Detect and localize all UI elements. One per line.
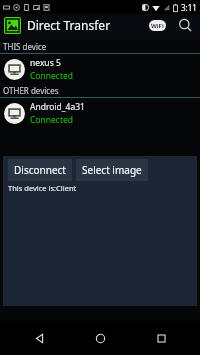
button[interactable]: Wi-Fi Direct settings [146,14,168,36]
staticText: Select image [82,163,142,177]
staticText: Disconnect [14,163,66,177]
staticText: Connected [30,70,73,82]
button[interactable]: Android_4a31 [0,98,200,128]
staticText: THIS device [3,41,47,52]
staticText: WiFi [151,22,164,30]
staticText: Direct Transfer [27,17,111,33]
button[interactable]: Back [17,321,61,355]
button[interactable]: Recent apps [139,321,183,355]
staticText: OTHER devices [3,85,59,96]
staticText: Android_4a31 [30,101,85,113]
button[interactable]: Home [78,321,122,355]
staticText: Connected [30,114,73,126]
staticText: 3:11 [181,2,197,13]
button[interactable]: App icon [4,17,21,34]
staticText: This device is:Client [8,183,77,193]
button[interactable]: Select image [76,159,148,181]
button[interactable]: Search [174,14,196,36]
button[interactable]: Disconnect [8,159,72,181]
staticText: nexus 5 [30,57,61,69]
button[interactable]: nexus 5 [0,54,200,84]
